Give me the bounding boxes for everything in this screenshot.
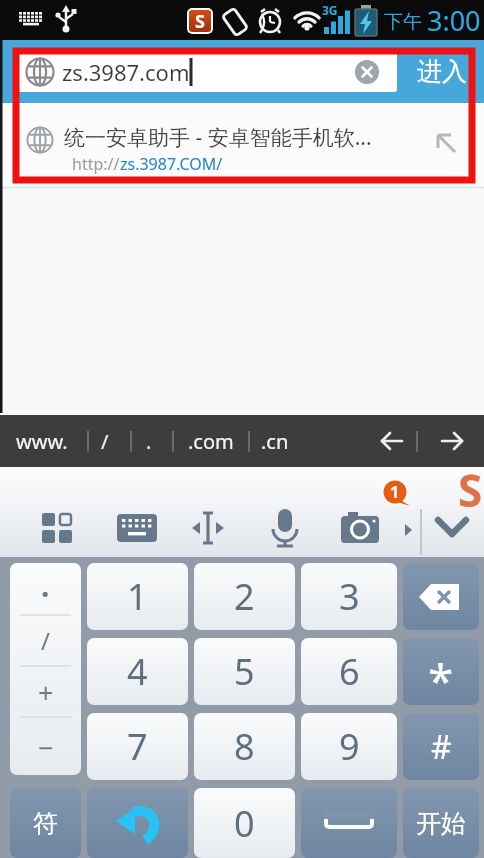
staticText: 7 xyxy=(127,722,148,771)
button[interactable]: 9 xyxy=(301,713,397,780)
button[interactable]: · xyxy=(10,563,81,775)
staticText: 9 xyxy=(339,722,360,771)
staticText: .com xyxy=(188,428,234,455)
staticText: 4 xyxy=(127,647,148,696)
staticText: * xyxy=(428,649,454,705)
staticText: + xyxy=(38,674,54,708)
button[interactable]: 开始 xyxy=(403,788,479,858)
button[interactable]: . xyxy=(136,415,162,467)
button[interactable]: .cn xyxy=(252,415,298,467)
staticText: 统一安卓助手 - 安卓智能手机软... xyxy=(64,123,372,151)
button[interactable]: / xyxy=(92,415,118,467)
button[interactable]: zs.3987.com xyxy=(14,52,397,92)
staticText: 8 xyxy=(234,722,255,771)
button[interactable]: 3 xyxy=(301,563,397,630)
button[interactable] xyxy=(301,788,397,858)
staticText: www. xyxy=(16,428,68,455)
staticText: 2 xyxy=(234,572,255,621)
staticText: / xyxy=(41,624,50,657)
button[interactable]: 0 xyxy=(194,788,295,858)
button[interactable]: .com xyxy=(180,415,242,467)
staticText: zs.3987.com xyxy=(62,57,190,87)
staticText: http:// xyxy=(72,153,120,175)
button[interactable] xyxy=(343,511,377,545)
button[interactable]: 统一安卓助手 - 安卓智能手机软... xyxy=(0,103,484,185)
button[interactable] xyxy=(403,563,479,630)
staticText: 进入 xyxy=(417,56,467,87)
staticText: · xyxy=(41,573,50,607)
button[interactable] xyxy=(191,511,225,545)
button[interactable]: 6 xyxy=(301,638,397,705)
button[interactable]: www. xyxy=(8,415,76,467)
staticText: 开始 xyxy=(416,808,466,839)
staticText: S xyxy=(458,460,483,520)
staticText: 1 xyxy=(127,572,148,621)
button[interactable] xyxy=(432,415,472,467)
staticText: 5 xyxy=(234,647,255,696)
button[interactable]: # xyxy=(403,713,479,780)
button[interactable]: 4 xyxy=(87,638,188,705)
staticText: 0 xyxy=(234,799,255,848)
button[interactable] xyxy=(120,511,154,545)
button[interactable] xyxy=(372,415,412,467)
button[interactable]: 进入 xyxy=(400,40,484,103)
staticText: 下午 xyxy=(384,8,427,34)
staticText: − xyxy=(38,729,54,763)
staticText: 3G xyxy=(322,2,338,18)
staticText: / xyxy=(101,428,109,455)
button[interactable]: * xyxy=(403,638,479,705)
staticText: 3 xyxy=(339,572,360,621)
staticText: zs.3987.COM/ xyxy=(120,153,223,175)
staticText: 符 xyxy=(33,808,58,839)
staticText: .cn xyxy=(261,428,289,455)
button[interactable] xyxy=(40,511,74,545)
button[interactable]: 2 xyxy=(194,563,295,630)
button[interactable] xyxy=(87,788,188,858)
staticText: . xyxy=(146,428,152,455)
staticText: 3:00 xyxy=(427,2,481,39)
button[interactable]: 5 xyxy=(194,638,295,705)
button[interactable] xyxy=(436,511,470,545)
staticText: 6 xyxy=(339,647,360,696)
staticText: S xyxy=(195,9,205,34)
button[interactable]: 7 xyxy=(87,713,188,780)
button[interactable]: 8 xyxy=(194,713,295,780)
staticText: # xyxy=(431,725,452,769)
button[interactable]: 符 xyxy=(10,788,81,858)
button[interactable]: 1 xyxy=(87,563,188,630)
button[interactable] xyxy=(268,511,302,545)
staticText: 1 xyxy=(390,481,400,503)
